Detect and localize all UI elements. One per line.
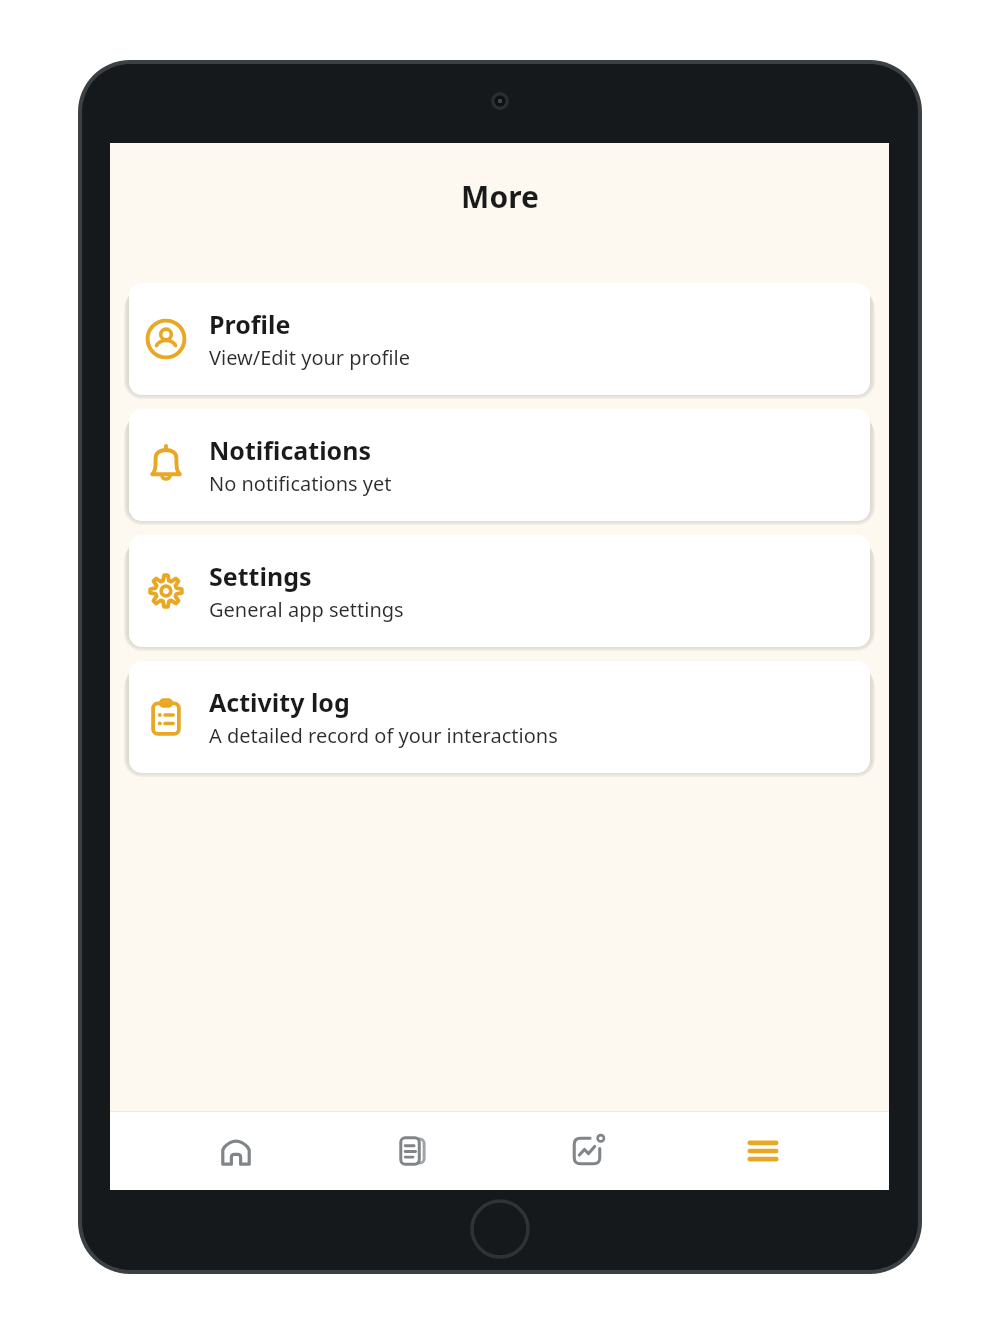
button[interactable]: Insights (537, 1111, 637, 1190)
staticText: Settings (209, 559, 312, 593)
staticText: More (461, 176, 539, 217)
staticText: A detailed record of your interactions (209, 722, 558, 749)
staticText: General app settings (209, 596, 404, 623)
button[interactable]: Profile (129, 283, 870, 395)
staticText: No notifications yet (209, 470, 392, 497)
staticText: Profile (209, 307, 291, 341)
button[interactable]: Settings (129, 535, 870, 647)
button[interactable]: More (713, 1111, 813, 1190)
button[interactable]: Home (186, 1111, 286, 1190)
staticText: Notifications (209, 433, 372, 467)
button[interactable]: Activity log (129, 661, 870, 773)
staticText: View/Edit your profile (209, 344, 411, 371)
button[interactable]: Documents (362, 1111, 462, 1190)
staticText: Activity log (209, 685, 350, 719)
button[interactable]: Notifications (129, 409, 870, 521)
